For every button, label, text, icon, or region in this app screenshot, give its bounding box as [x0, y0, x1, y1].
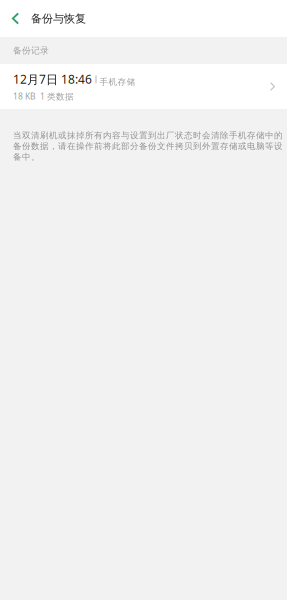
button[interactable]: Back: [0, 0, 31, 37]
staticText: 备份与恢复: [31, 11, 86, 25]
staticText: 备份记录: [13, 45, 49, 56]
staticText: 手机存储: [99, 77, 135, 87]
staticText: 18 KB 1 类数据: [13, 90, 74, 102]
staticText: 12月7日 18:46: [13, 71, 92, 87]
staticText: 当双清刷机或抹掉所有内容与设置到出厂状态时会清除手机存储中的备份数据，请在操作前…: [13, 130, 283, 162]
button[interactable]: 12月7日 18:46: [0, 64, 287, 109]
